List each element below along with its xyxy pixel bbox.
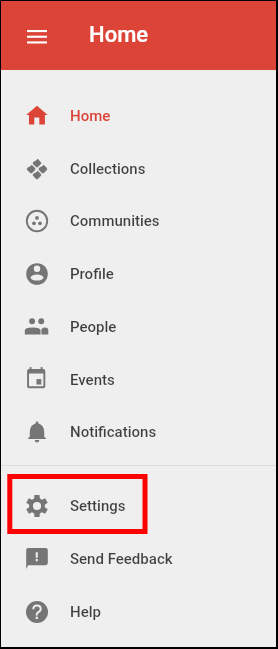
- staticText: Send Feedback: [70, 550, 173, 568]
- button[interactable]: Collections: [1, 142, 276, 195]
- button[interactable]: Profile: [1, 247, 276, 300]
- staticText: Events: [70, 371, 115, 389]
- staticText: Home: [89, 22, 149, 48]
- staticText: Home: [70, 107, 111, 125]
- staticText: Communities: [70, 212, 160, 230]
- button[interactable]: Communities: [1, 194, 276, 247]
- button[interactable]: People: [1, 300, 276, 353]
- button[interactable]: Send Feedback: [1, 532, 276, 585]
- button[interactable]: Home: [1, 89, 276, 142]
- staticText: Notifications: [70, 423, 157, 441]
- button[interactable]: Events: [1, 353, 276, 406]
- button[interactable]: Help: [1, 585, 276, 638]
- staticText: Profile: [70, 265, 114, 283]
- staticText: Settings: [70, 497, 126, 515]
- button[interactable]: Settings: [1, 479, 276, 532]
- button[interactable]: Notifications: [1, 405, 276, 458]
- staticText: Collections: [70, 160, 146, 178]
- staticText: People: [70, 318, 117, 336]
- button[interactable]: Open navigation drawer: [18, 18, 56, 56]
- staticText: Help: [70, 603, 101, 621]
